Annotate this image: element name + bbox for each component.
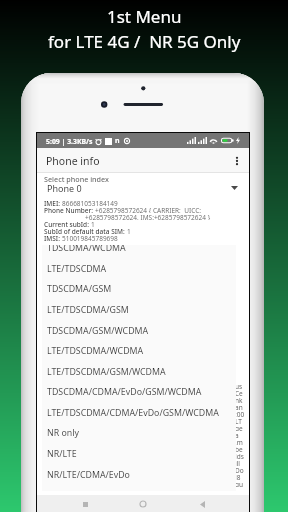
staticText: +6285798572624 { CARRIER; UICC: bbox=[95, 206, 202, 213]
staticText: ge bbox=[235, 424, 243, 431]
staticText: LTE/TDSCDMA/WCDMA bbox=[47, 345, 144, 357]
staticText: NR/LTE bbox=[47, 448, 77, 460]
staticText: TDSCDMA/CDMA/EvDo/GSM/WCDMA bbox=[47, 386, 202, 398]
button[interactable]: LTE/TDSCDMA/GSM/WCDMA bbox=[42, 361, 236, 382]
staticText: LTE/TDSCDMA bbox=[47, 263, 107, 275]
staticText: NR/LTE/CDMA/EvDo bbox=[47, 469, 130, 481]
staticText: nk bbox=[235, 396, 243, 403]
staticText: 5:09 | 3.3KB/s bbox=[46, 137, 93, 146]
staticText: Select phone index bbox=[44, 174, 109, 184]
staticText: n bbox=[115, 136, 120, 146]
staticText: IMEI: bbox=[44, 199, 62, 206]
button[interactable]: LTE/TDSCDMA/CDMA/EvDo/GSM/WCDMA bbox=[42, 402, 236, 423]
staticText: a bbox=[235, 431, 239, 438]
staticText: LT bbox=[235, 417, 242, 424]
button[interactable]: More options bbox=[229, 153, 245, 169]
button[interactable]: Home bbox=[132, 495, 154, 512]
staticText: Phone info bbox=[46, 154, 100, 168]
staticText: 510019845789698 bbox=[62, 234, 118, 241]
staticText: Phone 0 bbox=[47, 182, 82, 194]
staticText: LTE/TDSCDMA/GSM/WCDMA bbox=[47, 366, 166, 378]
staticText: TDSCDMA/GSM bbox=[47, 283, 112, 295]
staticText: for LTE 4G / NR 5G Only bbox=[48, 30, 241, 53]
staticText: qu bbox=[235, 480, 244, 487]
staticText: Ce bbox=[235, 389, 243, 396]
button[interactable]: Recent apps bbox=[74, 495, 96, 512]
staticText: NR only bbox=[47, 427, 79, 439]
button[interactable]: NR/LTE bbox=[42, 443, 236, 464]
button[interactable]: Back bbox=[191, 495, 213, 512]
staticText: lds bbox=[235, 452, 244, 459]
button[interactable]: NR only bbox=[42, 422, 236, 443]
staticText: SubId of default data SIM: bbox=[44, 227, 127, 234]
staticText: 1st Menu bbox=[107, 5, 182, 28]
button[interactable]: TDSCDMA/GSM/WCDMA bbox=[42, 320, 236, 341]
staticText: TDSCDMA/GSM/WCDMA bbox=[47, 325, 149, 337]
staticText: ill bbox=[235, 459, 241, 466]
staticText: l8 bbox=[235, 473, 241, 480]
button[interactable]: LTE/TDSCDMA/GSM bbox=[42, 299, 236, 320]
staticText: Phone Number: bbox=[44, 206, 95, 213]
staticText: 1 bbox=[91, 220, 95, 227]
staticText: IMSI: bbox=[44, 234, 62, 241]
staticText: Do bbox=[235, 466, 244, 473]
staticText: TDSCDMA/WCDMA bbox=[47, 245, 126, 254]
button[interactable]: NR/LTE/CDMA/EvDo bbox=[42, 464, 236, 485]
button[interactable]: TDSCDMA/GSM bbox=[42, 278, 236, 299]
button[interactable]: TDSCDMA/WCDMA bbox=[42, 245, 236, 258]
staticText: be bbox=[235, 445, 243, 452]
button[interactable]: TDSCDMA/CDMA/EvDo/GSM/WCDMA bbox=[42, 381, 236, 402]
staticText: us bbox=[235, 382, 243, 389]
staticText: LTE/TDSCDMA/GSM bbox=[47, 304, 129, 316]
staticText: ,m bbox=[235, 438, 243, 445]
button[interactable]: LTE/TDSCDMA bbox=[42, 258, 236, 279]
staticText: 1 bbox=[127, 227, 131, 234]
staticText: 866681053184149 bbox=[62, 199, 118, 206]
button[interactable]: LTE/TDSCDMA/WCDMA bbox=[42, 340, 236, 361]
staticText: an bbox=[235, 403, 243, 410]
staticText: LTE/TDSCDMA/CDMA/EvDo/GSM/WCDMA bbox=[47, 407, 219, 419]
staticText: Current subId: bbox=[44, 220, 91, 227]
staticText: +6285798572624, IMS:+6285798572624 } bbox=[85, 213, 211, 220]
staticText: :00 bbox=[235, 410, 245, 417]
